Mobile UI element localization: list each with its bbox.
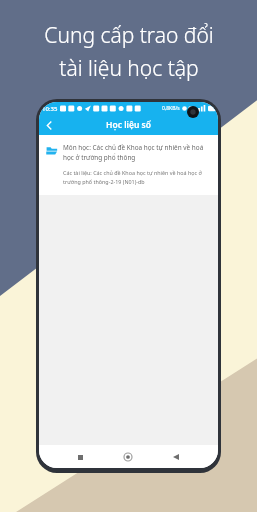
staticText: 10:35 xyxy=(42,105,58,113)
staticText: Các tài liệu: Các chủ đề Khoa học tự nhi… xyxy=(63,169,209,186)
staticText: 0,8KB/s xyxy=(162,105,180,112)
staticText: Học liệu số xyxy=(106,119,151,131)
staticText: Cung cấp trao đổi xyxy=(44,21,214,50)
staticText: tài liệu học tập xyxy=(59,54,199,83)
button[interactable]: Back xyxy=(39,115,59,135)
button[interactable]: Môn học: Các chủ đề Khoa học tự nhiên về… xyxy=(39,135,218,195)
button[interactable]: Back xyxy=(167,448,185,466)
button[interactable]: Recent apps xyxy=(71,448,89,466)
button[interactable]: Home xyxy=(119,448,137,466)
staticText: Môn học: Các chủ đề Khoa học tự nhiên về… xyxy=(63,143,212,162)
